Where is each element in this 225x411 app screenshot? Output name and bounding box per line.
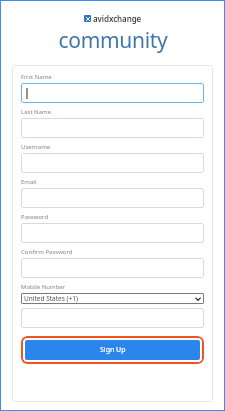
staticText: community xyxy=(58,26,168,55)
staticText: First Name xyxy=(21,73,52,81)
button[interactable] xyxy=(21,188,204,208)
button[interactable] xyxy=(21,153,204,173)
button[interactable] xyxy=(21,308,204,328)
staticText: Username xyxy=(21,143,51,151)
staticText: United States (+1) xyxy=(24,294,195,303)
button[interactable]: Sign Up xyxy=(25,340,200,360)
button[interactable] xyxy=(21,83,204,103)
staticText: Confirm Password xyxy=(21,248,73,256)
button[interactable] xyxy=(21,118,204,138)
button[interactable] xyxy=(21,223,204,243)
button[interactable] xyxy=(21,258,204,278)
staticText: Sign Up xyxy=(100,345,126,355)
staticText: avidxchange xyxy=(93,13,142,24)
staticText: Password xyxy=(21,213,49,221)
staticText: Last Name xyxy=(21,108,52,116)
staticText: Mobile Number xyxy=(21,283,66,291)
button[interactable]: Country code selector xyxy=(21,293,204,304)
staticText: Email xyxy=(21,178,37,186)
